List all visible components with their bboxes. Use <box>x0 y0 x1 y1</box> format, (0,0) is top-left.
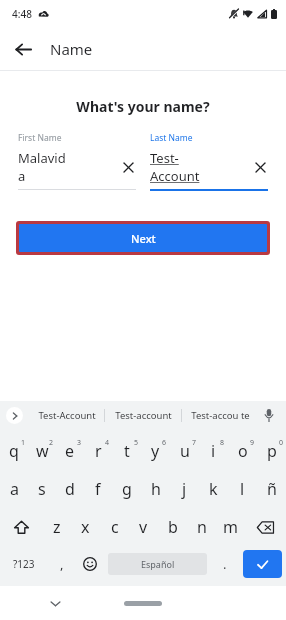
staticText: Test-Account <box>150 149 201 185</box>
button[interactable]: t <box>112 432 141 470</box>
staticText: Test-Account <box>38 409 96 422</box>
staticText: 5 <box>134 438 139 448</box>
staticText: 4:48 <box>12 7 32 21</box>
button[interactable]: Next <box>19 224 267 252</box>
staticText: Español <box>141 558 175 570</box>
staticText: Test-accou te <box>191 409 250 422</box>
button[interactable]: Test-account <box>105 401 181 429</box>
staticText: d <box>65 478 75 500</box>
button[interactable]: Home <box>124 601 162 606</box>
staticText: s <box>38 478 46 500</box>
button[interactable]: c <box>100 508 129 546</box>
button[interactable]: Voice input <box>258 401 280 429</box>
button[interactable]: Clear Last Name <box>252 159 268 175</box>
staticText: 2 <box>49 438 54 448</box>
staticText: f <box>95 478 101 500</box>
staticText: p <box>267 440 277 462</box>
staticText: 4 <box>105 438 110 448</box>
button[interactable]: k <box>199 470 228 508</box>
button[interactable]: First Name <box>18 132 136 190</box>
staticText: h <box>151 478 161 500</box>
staticText: 8 <box>220 438 225 448</box>
button[interactable]: f <box>84 470 112 508</box>
staticText: j <box>182 478 187 500</box>
button[interactable]: More suggestions <box>6 407 23 424</box>
staticText: ñ <box>267 478 277 500</box>
button[interactable]: Back <box>6 32 40 66</box>
button[interactable]: Test-accou te <box>182 401 258 429</box>
button[interactable]: . <box>211 546 239 582</box>
button[interactable]: x <box>71 508 100 546</box>
button[interactable]: l <box>228 470 257 508</box>
button[interactable]: i <box>199 432 228 470</box>
staticText: First Name <box>18 132 62 144</box>
staticText: Last Name <box>150 132 193 144</box>
staticText: t <box>124 440 130 462</box>
staticText: Next <box>131 231 156 246</box>
staticText: n <box>197 516 207 538</box>
staticText: x <box>81 516 90 538</box>
staticText: k <box>209 478 218 500</box>
staticText: g <box>122 478 132 500</box>
staticText: What's your name? <box>0 97 286 116</box>
button[interactable]: u <box>170 432 199 470</box>
staticText: 7 <box>192 438 197 448</box>
button[interactable]: o <box>228 432 257 470</box>
button[interactable]: r <box>84 432 112 470</box>
button[interactable]: z <box>42 508 71 546</box>
staticText: 6 <box>162 438 167 448</box>
button[interactable]: Last Name <box>150 132 268 191</box>
staticText: . <box>223 555 227 573</box>
button[interactable]: Clear First Name <box>120 159 136 175</box>
staticText: u <box>180 440 190 462</box>
button[interactable]: v <box>129 508 158 546</box>
staticText: l <box>240 478 245 500</box>
staticText: Test-account <box>115 409 172 422</box>
button[interactable]: Backspace <box>245 508 286 546</box>
button[interactable]: Shift <box>0 508 42 546</box>
staticText: Malavida <box>18 149 69 185</box>
button[interactable]: w <box>28 432 56 470</box>
button[interactable]: h <box>141 470 170 508</box>
staticText: r <box>95 440 102 462</box>
staticText: , <box>60 555 64 573</box>
button[interactable]: ?123 <box>0 546 48 582</box>
button[interactable]: s <box>28 470 56 508</box>
button[interactable]: Emoji <box>76 546 104 582</box>
staticText: w <box>36 440 49 462</box>
button[interactable]: a <box>0 470 28 508</box>
staticText: 0 <box>279 438 284 448</box>
staticText: y <box>151 440 160 462</box>
button[interactable]: d <box>56 470 84 508</box>
button[interactable]: e <box>56 432 84 470</box>
button[interactable]: Hide keyboard <box>44 592 66 614</box>
staticText: a <box>10 478 19 500</box>
button[interactable]: n <box>187 508 216 546</box>
button[interactable]: g <box>112 470 141 508</box>
staticText: 1 <box>21 438 26 448</box>
staticText: v <box>139 516 148 538</box>
staticText: e <box>65 440 75 462</box>
staticText: b <box>168 516 178 538</box>
button[interactable]: Enter <box>243 550 282 578</box>
staticText: 3 <box>77 438 82 448</box>
staticText: c <box>111 516 119 538</box>
button[interactable]: Test-Account <box>29 401 104 429</box>
button[interactable]: m <box>216 508 245 546</box>
staticText: q <box>9 440 19 462</box>
button[interactable]: j <box>170 470 199 508</box>
button[interactable]: q <box>0 432 28 470</box>
staticText: i <box>211 440 216 462</box>
staticText: ?123 <box>13 557 35 571</box>
staticText: 9 <box>250 438 255 448</box>
staticText: Name <box>50 39 93 59</box>
staticText: o <box>238 440 248 462</box>
button[interactable]: ñ <box>257 470 286 508</box>
staticText: z <box>53 516 61 538</box>
button[interactable]: , <box>48 546 76 582</box>
button[interactable]: y <box>141 432 170 470</box>
button[interactable]: Español <box>108 553 207 575</box>
button[interactable]: p <box>257 432 286 470</box>
staticText: m <box>223 516 238 538</box>
button[interactable]: b <box>158 508 187 546</box>
